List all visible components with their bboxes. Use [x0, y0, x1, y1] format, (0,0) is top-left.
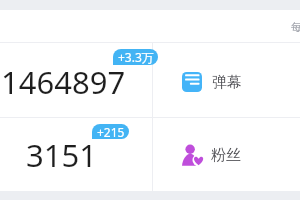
staticText: 弹幕	[212, 73, 242, 92]
button[interactable]: 1464897	[0, 43, 152, 117]
button[interactable]: 3151	[0, 118, 152, 191]
staticText: 粉丝	[211, 146, 241, 165]
staticText: +3.3万	[118, 49, 154, 65]
other: 粉丝	[182, 144, 204, 166]
button[interactable]: 弹幕	[153, 43, 300, 117]
other: 弹幕	[182, 72, 202, 92]
button[interactable]: 每日	[0, 10, 300, 42]
staticText: +215	[97, 124, 125, 139]
staticText: 每日	[291, 20, 300, 34]
staticText: 1464897	[1, 61, 126, 103]
staticText: 3151	[26, 134, 97, 176]
button[interactable]: 粉丝	[153, 118, 300, 191]
